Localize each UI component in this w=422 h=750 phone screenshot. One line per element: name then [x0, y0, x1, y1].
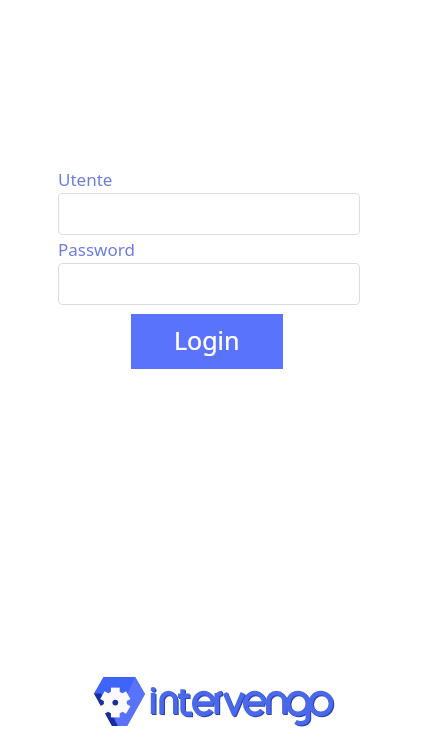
other: intervengo: [94, 677, 332, 727]
button[interactable]: Login: [131, 314, 283, 369]
staticText: Password: [58, 238, 135, 261]
staticText: Utente: [58, 168, 113, 191]
staticText: Login: [174, 323, 240, 357]
button[interactable]: [58, 193, 360, 235]
button[interactable]: [58, 263, 360, 305]
